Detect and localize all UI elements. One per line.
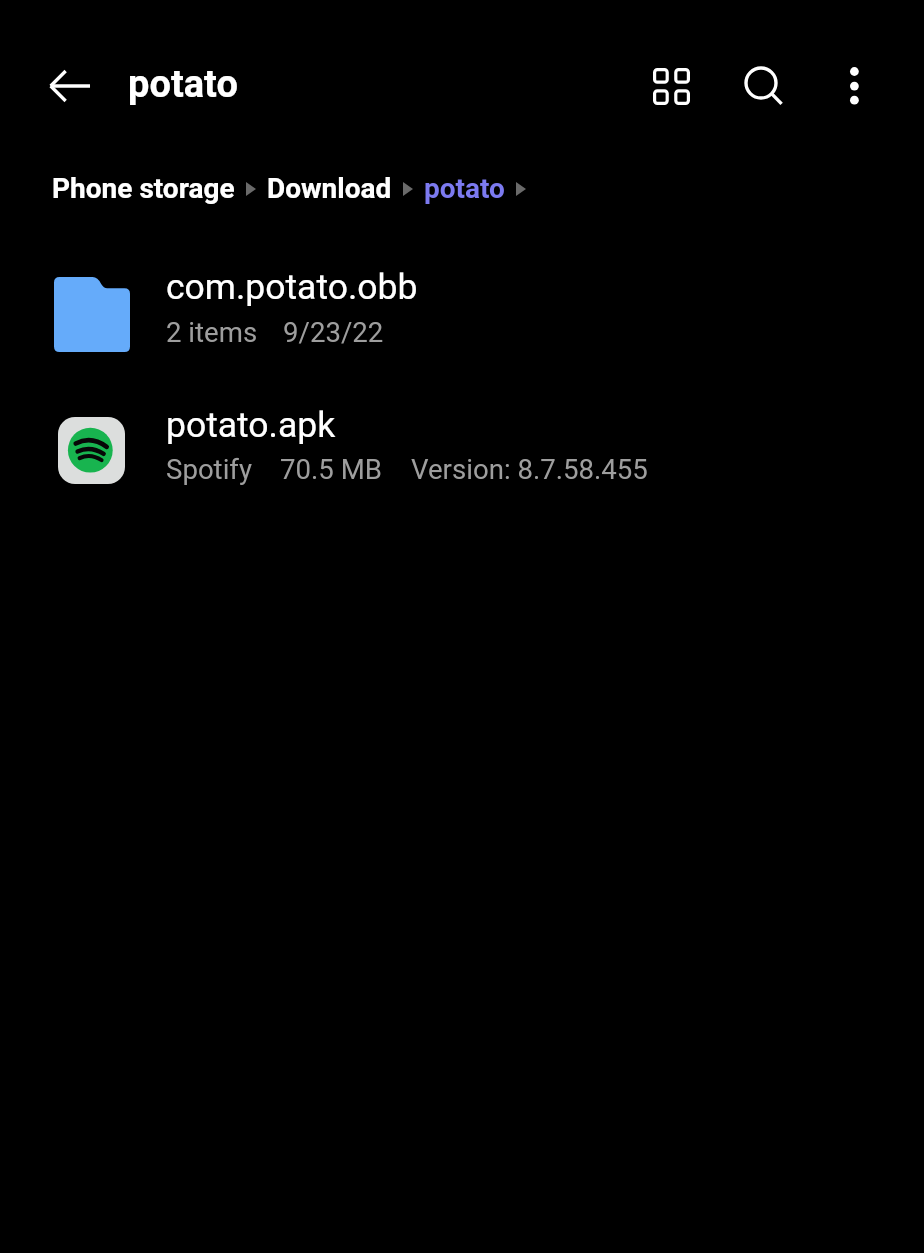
staticText: com.potato.obb [166, 266, 418, 308]
button[interactable]: Phone storage [52, 172, 235, 205]
staticText: Version: 8.7.58.455 [411, 453, 648, 485]
button[interactable]: potato [424, 172, 505, 205]
button[interactable]: Navigate up [40, 56, 100, 116]
staticText: 70.5 MB [280, 453, 382, 485]
button[interactable]: Grid view [641, 56, 701, 116]
staticText: 9/23/22 [283, 316, 384, 348]
staticText: 2 items [166, 316, 258, 348]
button[interactable]: com.potato.obb [0, 246, 924, 382]
staticText: Spotify [166, 453, 253, 485]
staticText: Phone storage [52, 172, 235, 205]
staticText: Download [267, 172, 392, 205]
staticText: potato.apk [166, 404, 336, 446]
staticText: potato [424, 172, 505, 205]
button[interactable]: Search [733, 56, 793, 116]
button[interactable]: Download [267, 172, 392, 205]
button[interactable]: More options [824, 56, 884, 116]
staticText: potato [128, 62, 238, 107]
button[interactable]: potato.apk [0, 382, 924, 518]
